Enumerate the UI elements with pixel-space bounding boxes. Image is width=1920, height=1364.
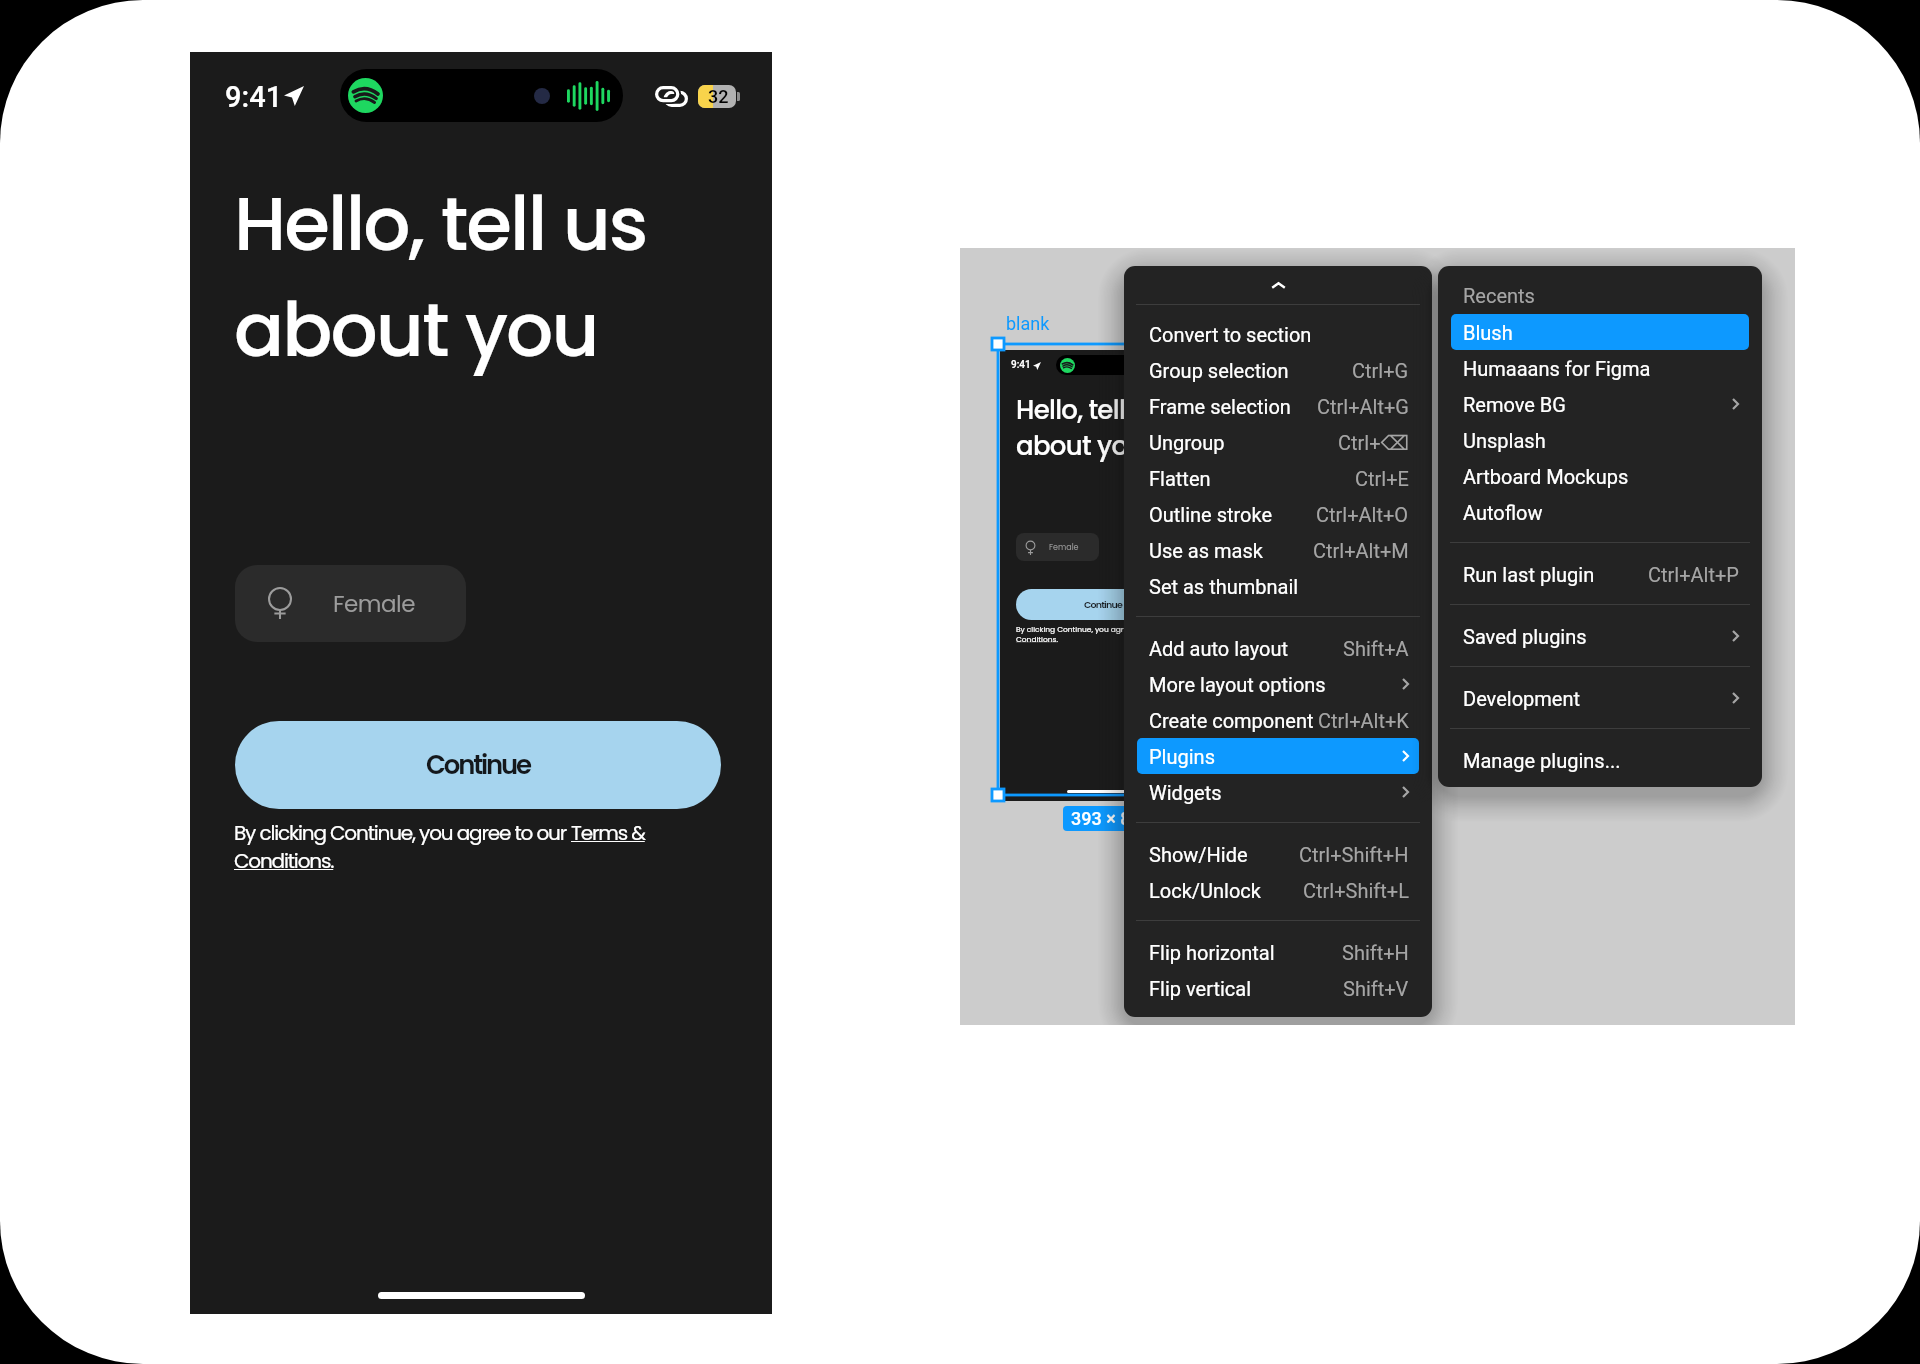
button[interactable]: Female xyxy=(235,565,466,642)
staticText: Ctrl+Shift+L xyxy=(1303,879,1409,902)
staticText: Group selection xyxy=(1149,359,1289,382)
staticText: Blush xyxy=(1463,321,1513,344)
staticText: Remove BG xyxy=(1463,393,1566,416)
button[interactable]: Group selection xyxy=(1137,352,1419,388)
button[interactable]: Use as mask xyxy=(1137,532,1419,568)
button[interactable]: Outline stroke xyxy=(1137,496,1419,532)
staticText: Ctrl+Shift+H xyxy=(1299,843,1409,866)
staticText: Set as thumbnail xyxy=(1149,575,1299,598)
other: Link xyxy=(655,86,688,107)
staticText: Flip horizontal xyxy=(1149,941,1275,964)
button[interactable]: Flatten xyxy=(1137,460,1419,496)
staticText: about yo xyxy=(1016,428,1128,464)
staticText: Conditions. xyxy=(1016,634,1058,644)
button[interactable]: Terms & xyxy=(571,819,645,847)
staticText: about you xyxy=(234,278,598,382)
staticText: Ctrl+E xyxy=(1355,467,1409,490)
staticText: By clicking Continue, you agree to our xyxy=(234,819,571,847)
staticText: Female xyxy=(1049,542,1079,553)
staticText: Saved plugins xyxy=(1463,625,1587,648)
staticText: blank xyxy=(1006,313,1050,334)
staticText: Manage plugins... xyxy=(1463,749,1621,772)
button[interactable]: Development xyxy=(1451,680,1749,716)
staticText: Hello, tell xyxy=(1016,392,1126,428)
staticText: Add auto layout xyxy=(1149,637,1289,660)
button[interactable]: Convert to section xyxy=(1137,316,1419,352)
staticText: Ctrl+Alt+K xyxy=(1318,709,1409,732)
staticText: Frame selection xyxy=(1149,395,1291,418)
staticText: Lock/Unlock xyxy=(1149,879,1261,902)
button[interactable]: Remove BG xyxy=(1451,386,1749,422)
other: Scroll up xyxy=(1271,282,1286,289)
button[interactable]: Flip vertical xyxy=(1137,970,1419,1006)
button[interactable]: Add auto layout xyxy=(1137,630,1419,666)
staticText: Ctrl+Alt+M xyxy=(1313,539,1409,562)
staticText: Ctrl+Alt+G xyxy=(1317,395,1409,418)
staticText: Outline stroke xyxy=(1149,503,1273,526)
button[interactable]: Frame selection xyxy=(1137,388,1419,424)
staticText: More layout options xyxy=(1149,673,1326,696)
button[interactable]: Continue xyxy=(235,721,721,809)
staticText: 9:41 xyxy=(1011,359,1031,371)
staticText: Convert to section xyxy=(1149,323,1312,346)
staticText: Unsplash xyxy=(1463,429,1546,452)
staticText: Flip vertical xyxy=(1149,977,1252,1000)
staticText: Plugins xyxy=(1149,745,1215,768)
staticText: Use as mask xyxy=(1149,539,1263,562)
button[interactable]: Create component xyxy=(1137,702,1419,738)
staticText: 393 × 852 xyxy=(1071,808,1151,829)
button[interactable]: Flip horizontal xyxy=(1137,934,1419,970)
staticText: Humaaans for Figma xyxy=(1463,357,1651,380)
button[interactable]: Conditions. xyxy=(234,847,334,875)
button[interactable]: Artboard Mockups xyxy=(1451,458,1749,494)
staticText: Artboard Mockups xyxy=(1463,465,1629,488)
staticText: Widgets xyxy=(1149,781,1222,804)
staticText: Female xyxy=(333,588,416,620)
button[interactable]: Lock/Unlock xyxy=(1137,872,1419,908)
staticText: Ctrl+⌫ xyxy=(1338,431,1409,454)
button[interactable]: Autoflow xyxy=(1451,494,1749,530)
staticText: 9:41 xyxy=(225,80,283,114)
button[interactable]: Blush xyxy=(1451,314,1749,350)
button[interactable]: Humaaans for Figma xyxy=(1451,350,1749,386)
button[interactable]: More layout options xyxy=(1137,666,1419,702)
staticText: Shift+V xyxy=(1343,977,1409,1000)
staticText: Create component xyxy=(1149,709,1314,732)
button[interactable]: Plugins xyxy=(1137,738,1419,774)
staticText: Ctrl+Alt+P xyxy=(1648,563,1739,586)
button[interactable]: Run last plugin xyxy=(1451,556,1749,592)
staticText: Ungroup xyxy=(1149,431,1225,454)
staticText: Ctrl+G xyxy=(1352,359,1409,382)
button[interactable]: Widgets xyxy=(1137,774,1419,810)
staticText: Run last plugin xyxy=(1463,563,1595,586)
staticText: By clicking Continue, you agree to xyxy=(1016,624,1143,634)
button[interactable]: Set as thumbnail xyxy=(1137,568,1419,604)
button[interactable]: Show/Hide xyxy=(1137,836,1419,872)
staticText: Recents xyxy=(1463,284,1535,307)
staticText: Shift+A xyxy=(1343,637,1409,660)
staticText: Autoflow xyxy=(1463,501,1543,524)
button[interactable]: Unsplash xyxy=(1451,422,1749,458)
staticText: Flatten xyxy=(1149,467,1211,490)
staticText: Shift+H xyxy=(1342,941,1409,964)
staticText: Continue xyxy=(426,747,530,783)
staticText: Hello, tell us xyxy=(234,172,647,276)
staticText: Ctrl+Alt+O xyxy=(1316,503,1409,526)
button[interactable]: Saved plugins xyxy=(1451,618,1749,654)
staticText: 32 xyxy=(708,86,729,107)
staticText: Continue xyxy=(1084,598,1122,611)
button[interactable]: Manage plugins... xyxy=(1451,742,1749,778)
button[interactable]: Ungroup xyxy=(1137,424,1419,460)
staticText: Development xyxy=(1463,687,1581,710)
staticText: Show/Hide xyxy=(1149,843,1248,866)
